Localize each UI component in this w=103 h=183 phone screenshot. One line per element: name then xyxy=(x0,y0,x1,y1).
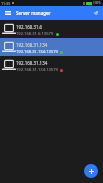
button[interactable]: 192.168.31.134 xyxy=(0,56,103,74)
staticText: 192.168.31.134:13579 xyxy=(16,67,58,73)
staticText: 192.168.31.6:13579 xyxy=(16,31,54,37)
staticText: 100% xyxy=(93,1,101,5)
staticText: 192.168.31.134:13579 xyxy=(16,49,58,55)
button[interactable]: Open navigation menu xyxy=(0,6,16,20)
staticText: 192.168.31.6 xyxy=(16,24,43,30)
staticText: Server manager xyxy=(16,10,51,16)
staticText: 192.168.31.134 xyxy=(16,60,48,66)
staticText: 192.168.31.134 xyxy=(16,42,48,48)
button[interactable]: 192.168.31.134 xyxy=(0,38,103,56)
staticText: 11:35 xyxy=(1,1,11,6)
button[interactable]: Refresh xyxy=(88,6,103,20)
button[interactable]: 192.168.31.6 xyxy=(0,20,103,38)
button[interactable]: Add server xyxy=(84,164,98,178)
